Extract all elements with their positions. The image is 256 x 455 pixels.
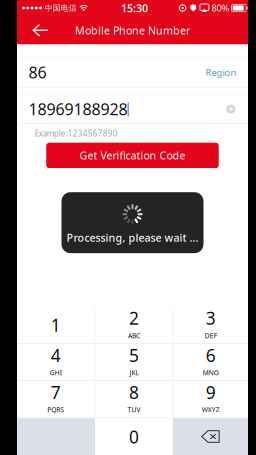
staticText: WXYZ <box>202 405 220 414</box>
staticText: Example:1234567890 <box>35 128 118 139</box>
staticText: MNO <box>203 368 219 377</box>
button[interactable]: 8 <box>95 381 173 417</box>
staticText: 18969188928 <box>29 98 128 120</box>
staticText: 1 <box>51 313 61 336</box>
button[interactable]: 1 <box>17 307 94 343</box>
staticText: 80% <box>211 2 229 14</box>
button[interactable]: Back <box>17 16 64 44</box>
staticText: Region <box>205 66 236 79</box>
staticText: 9 <box>206 381 216 404</box>
button[interactable]: Clear text <box>211 97 236 120</box>
staticText: 6 <box>206 344 216 367</box>
staticText: 3 <box>206 307 216 330</box>
button[interactable]: 4 <box>17 344 94 380</box>
button[interactable]: 3 <box>174 307 248 343</box>
staticText: 中国电信 <box>45 3 77 13</box>
staticText: JKL <box>129 368 138 377</box>
staticText: 86 <box>29 62 47 83</box>
button[interactable]: 0 <box>95 418 173 455</box>
button[interactable]: Get Verification Code <box>46 143 219 168</box>
staticText: DEF <box>205 331 217 340</box>
button[interactable]: Delete <box>173 418 248 455</box>
staticText: 4 <box>51 344 61 367</box>
staticText: Processing, please wait ... <box>66 230 198 245</box>
staticText: 2 <box>129 307 139 330</box>
staticText: 5 <box>129 344 139 367</box>
staticText: ABC <box>128 331 140 340</box>
staticText: 15:30 <box>121 1 148 15</box>
staticText: 0 <box>129 425 139 448</box>
button[interactable]: 5 <box>95 344 173 380</box>
staticText: 7 <box>51 381 61 404</box>
button[interactable]: 9 <box>174 381 248 417</box>
staticText: 8 <box>129 381 139 404</box>
staticText: Get Verification Code <box>79 148 185 163</box>
button[interactable]: 2 <box>95 307 173 343</box>
staticText: GHI <box>50 368 62 377</box>
staticText: TUV <box>127 405 140 414</box>
button[interactable]: 7 <box>17 381 94 417</box>
staticText: Mobile Phone Number <box>75 23 190 37</box>
button[interactable]: Region <box>187 60 236 85</box>
button[interactable]: 6 <box>174 344 248 380</box>
staticText: PQRS <box>47 405 64 414</box>
